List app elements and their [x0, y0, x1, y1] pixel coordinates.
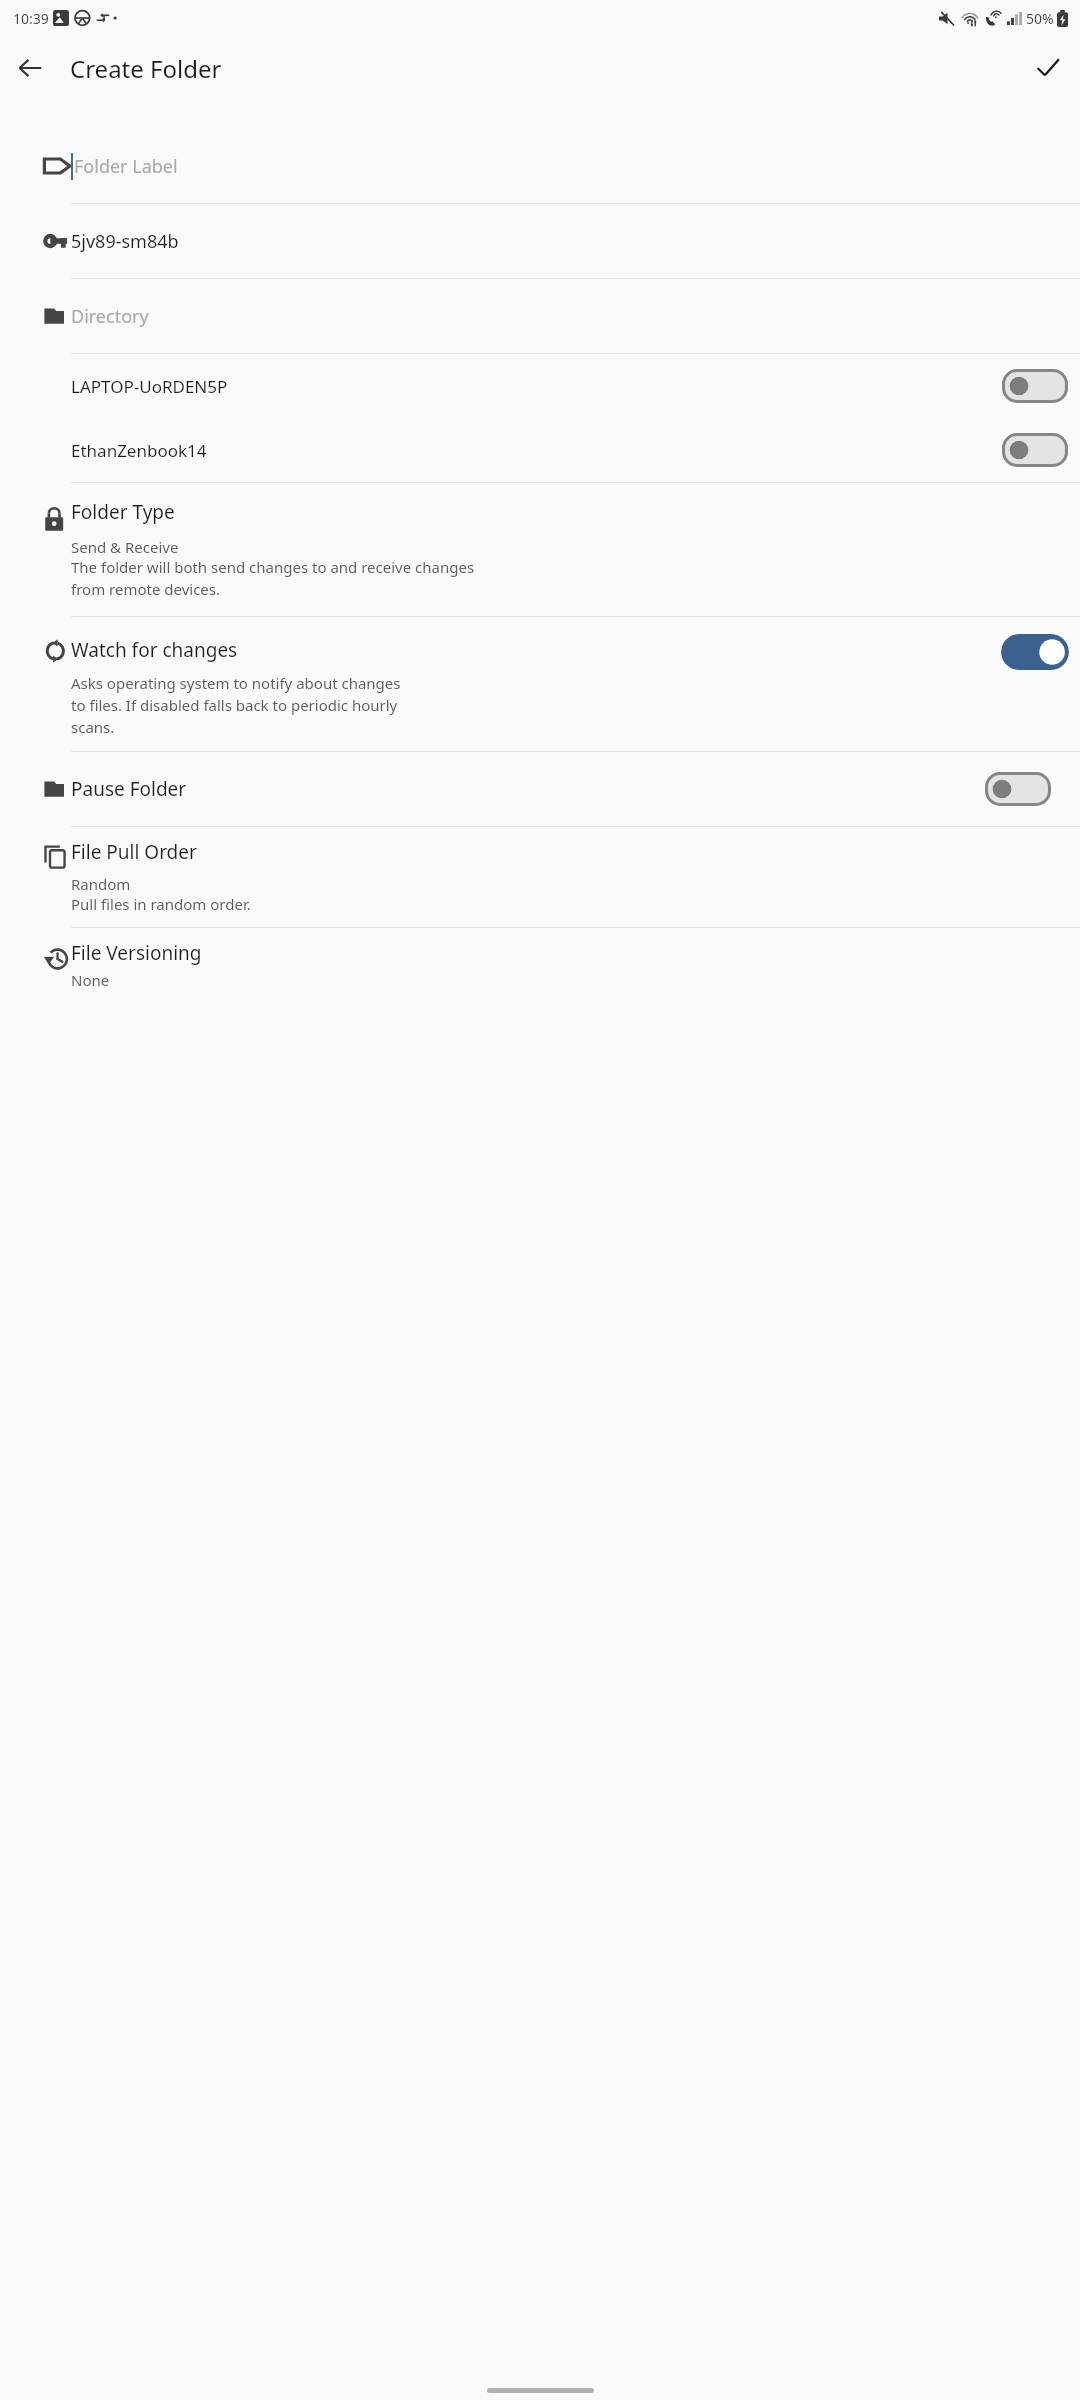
staticText: File Versioning	[71, 940, 202, 966]
staticText: Send & Receive	[71, 537, 179, 557]
button[interactable]: Disabled	[984, 771, 1052, 807]
button[interactable]: Back	[6, 44, 54, 92]
staticText: Watch for changes	[71, 637, 238, 663]
staticText: Pull files in random order.	[71, 894, 251, 914]
button[interactable]: 5jv89-sm84b	[0, 204, 1080, 278]
button[interactable]: File Versioning	[0, 928, 1080, 1018]
staticText: LAPTOP-UoRDEN5P	[71, 375, 228, 398]
staticText: None	[71, 970, 110, 990]
staticText: 10:39	[13, 9, 49, 28]
staticText: The folder will both send changes to and…	[71, 557, 475, 600]
button[interactable]: File Pull Order	[0, 827, 1080, 927]
staticText: EthanZenbook14	[71, 439, 207, 462]
button[interactable]: Disabled	[1001, 432, 1069, 468]
button[interactable]: Folder Type	[0, 483, 1080, 616]
button[interactable]: Save folder	[1024, 44, 1072, 92]
button[interactable]: Pause Folder	[0, 752, 1080, 826]
staticText: Directory	[71, 304, 149, 329]
button[interactable]: EthanZenbook14	[0, 418, 1080, 482]
button[interactable]: Directory	[0, 279, 1080, 353]
staticText: Asks operating system to notify about ch…	[71, 673, 401, 738]
button[interactable]: LAPTOP-UoRDEN5P	[0, 354, 1080, 418]
staticText: File Pull Order	[71, 839, 197, 865]
staticText: 5jv89-sm84b	[71, 229, 179, 254]
button[interactable]: Watch for changes	[0, 617, 1080, 751]
button[interactable]: Enabled	[1001, 634, 1069, 670]
staticText: Folder Type	[71, 499, 175, 525]
staticText: Folder Label	[74, 154, 178, 179]
staticText: Random	[71, 874, 131, 894]
staticText: 50%	[1026, 9, 1054, 28]
staticText: Pause Folder	[71, 776, 187, 802]
button[interactable]: Folder Label	[0, 129, 1080, 203]
button[interactable]: Disabled	[1001, 368, 1069, 404]
staticText: Create Folder	[70, 52, 222, 85]
